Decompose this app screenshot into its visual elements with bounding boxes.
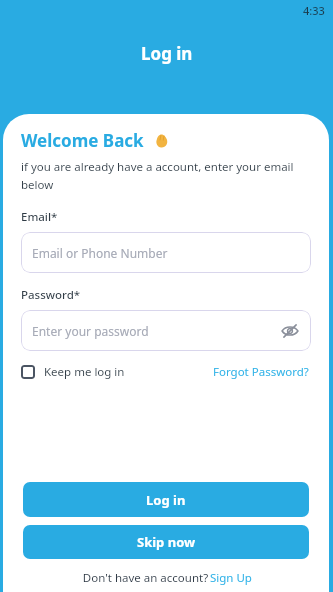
staticText: Email or Phone Number: [32, 245, 168, 261]
staticText: if you are already have a account, enter…: [21, 159, 303, 192]
staticText: Log in: [141, 42, 193, 65]
button[interactable]: Keep me log in: [21, 364, 125, 380]
staticText: Sign Up: [210, 570, 252, 586]
button[interactable]: Enter your password: [21, 310, 311, 351]
staticText: Enter your password: [32, 323, 149, 339]
staticText: Don't have an account?: [81, 570, 210, 586]
staticText: Log in: [146, 491, 186, 509]
staticText: Password*: [21, 287, 81, 303]
staticText: 4:33: [303, 3, 325, 18]
staticText: Forgot Password?: [213, 364, 309, 380]
button[interactable]: Show password: [277, 318, 303, 344]
staticText: Email*: [21, 209, 58, 225]
button[interactable]: Skip now: [23, 525, 309, 559]
staticText: Welcome Back: [21, 129, 144, 152]
button[interactable]: Forgot Password?: [213, 364, 309, 380]
button[interactable]: Log in: [23, 482, 309, 517]
staticText: Skip now: [137, 533, 196, 551]
button[interactable]: Email or Phone Number: [21, 232, 311, 273]
staticText: Keep me log in: [44, 364, 125, 380]
button[interactable]: Sign Up: [210, 570, 252, 586]
